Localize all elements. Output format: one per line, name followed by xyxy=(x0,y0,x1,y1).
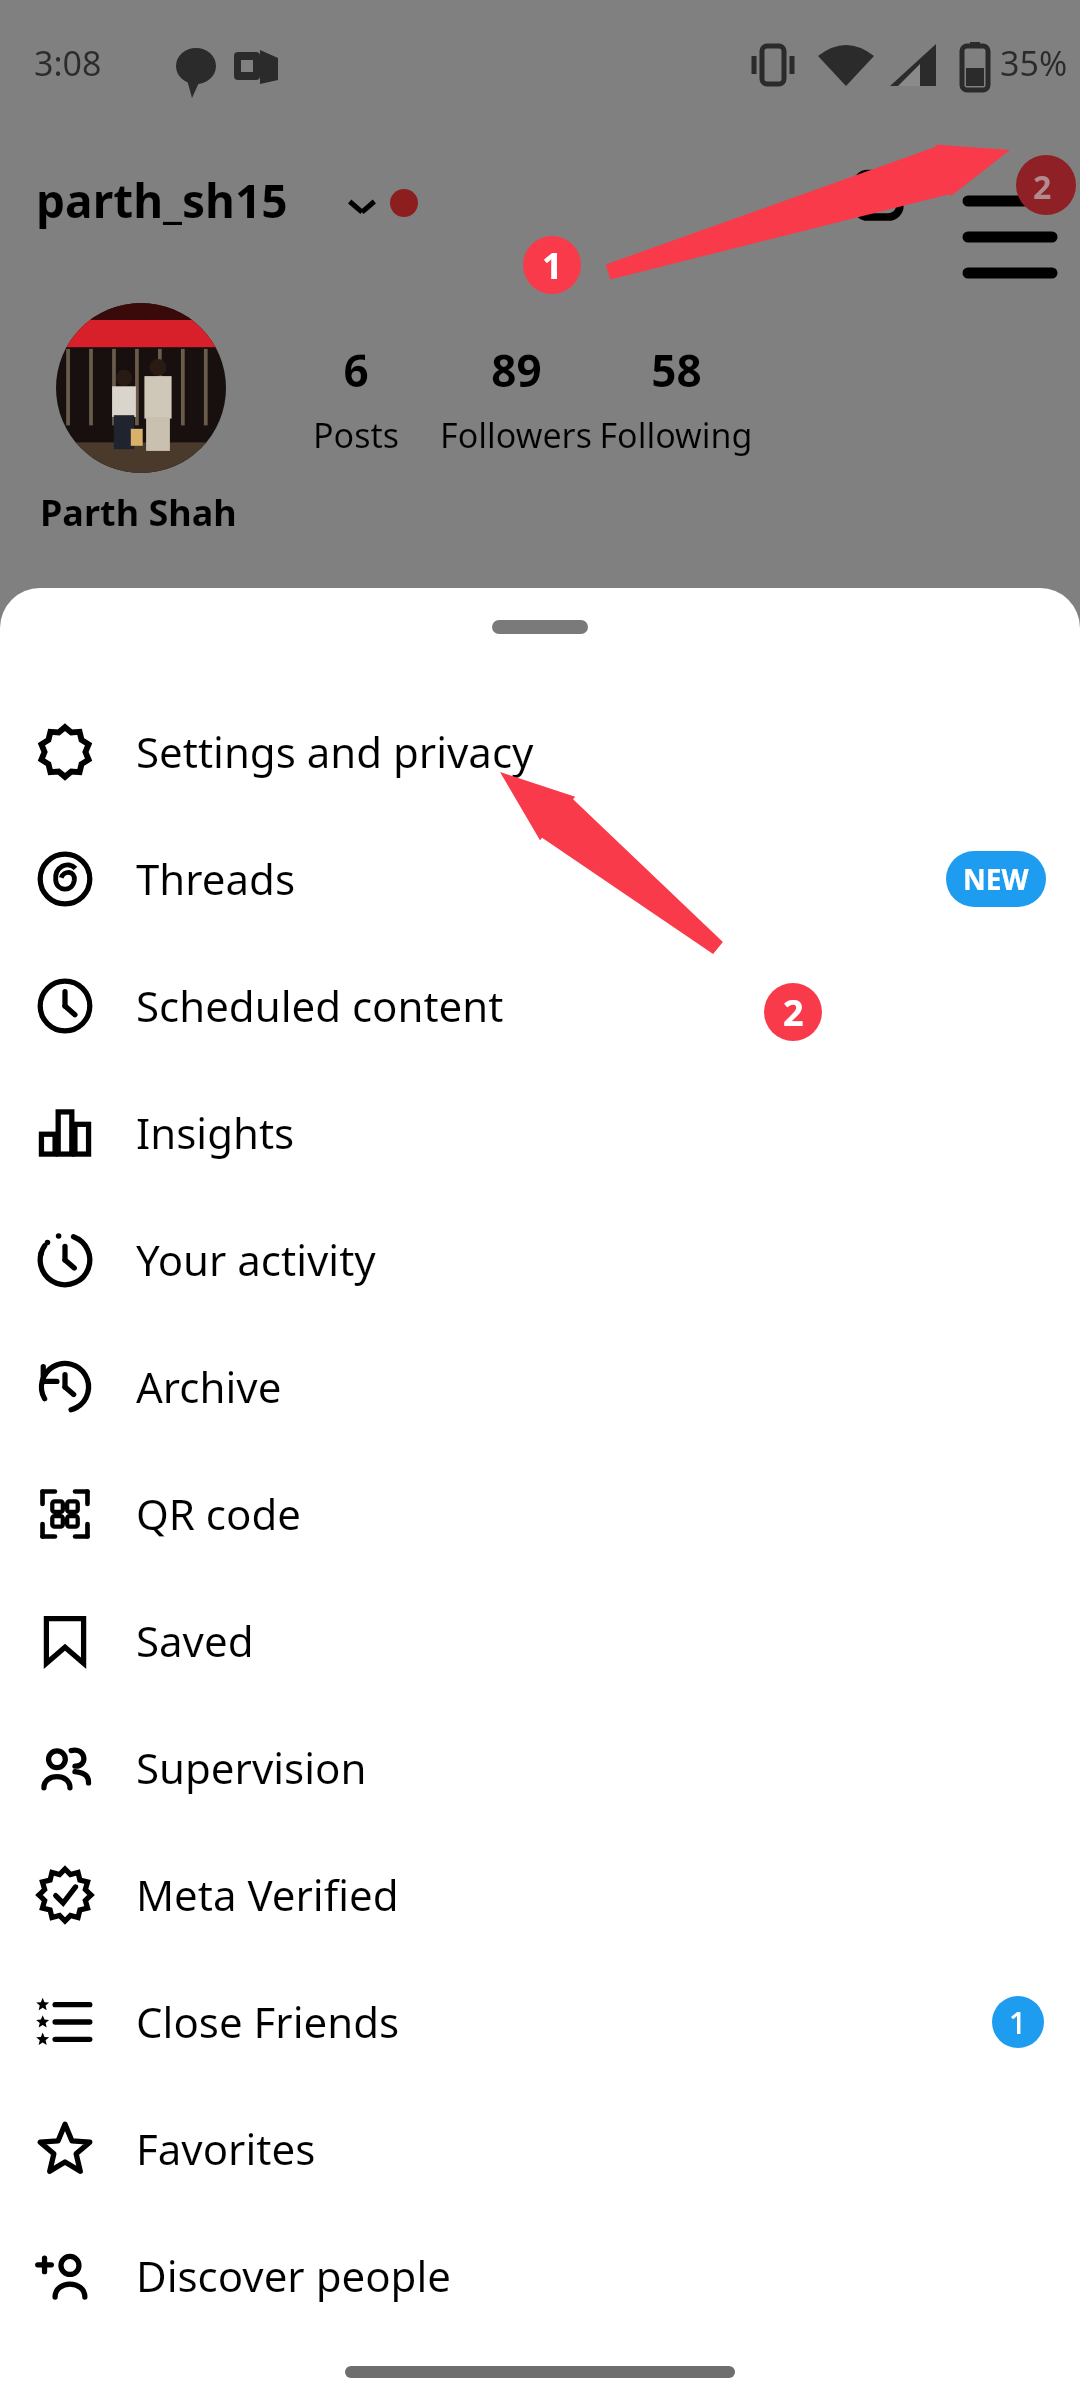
staticText: Archive xyxy=(136,1358,282,1415)
button[interactable]: 58 xyxy=(556,340,796,470)
button[interactable]: Switch account xyxy=(340,183,384,227)
staticText: Meta Verified xyxy=(136,1866,399,1923)
staticText: Close Friends xyxy=(136,1993,400,2050)
staticText: Settings and privacy xyxy=(136,723,534,780)
button[interactable]: Threads xyxy=(0,815,1080,942)
button[interactable]: Close Friends xyxy=(0,1958,1080,2085)
button[interactable]: Archive xyxy=(0,1323,1080,1450)
staticText: 2 xyxy=(783,988,804,1037)
staticText: Favorites xyxy=(136,2120,316,2177)
staticText: 2 xyxy=(1033,165,1052,209)
staticText: Supervision xyxy=(136,1739,367,1796)
button[interactable]: QR code xyxy=(0,1450,1080,1577)
button[interactable]: Saved xyxy=(0,1577,1080,1704)
staticText: Following xyxy=(599,412,753,458)
button[interactable]: 6 xyxy=(236,340,476,470)
staticText: 35% xyxy=(1000,40,1068,86)
staticText: Your activity xyxy=(136,1231,376,1288)
staticText: 58 xyxy=(651,340,702,400)
button[interactable]: Favorites xyxy=(0,2085,1080,2212)
staticText: Threads xyxy=(136,850,296,907)
button[interactable] xyxy=(56,303,226,473)
staticText: Insights xyxy=(136,1104,295,1161)
button[interactable]: Your activity xyxy=(0,1196,1080,1323)
staticText: 3:08 xyxy=(34,40,102,86)
staticText: Posts xyxy=(313,412,399,458)
button[interactable]: parth_sh15 xyxy=(36,169,288,232)
button[interactable]: Supervision xyxy=(0,1704,1080,1831)
staticText: Discover people xyxy=(136,2247,451,2304)
staticText: 1 xyxy=(1009,2002,1027,2043)
staticText: Followers xyxy=(440,412,592,458)
staticText: Saved xyxy=(136,1612,254,1669)
button[interactable]: Scheduled content xyxy=(0,942,1080,1069)
staticText: NEW xyxy=(963,860,1029,898)
button[interactable]: Discover people xyxy=(0,2212,1080,2339)
button[interactable]: Settings and privacy xyxy=(0,688,1080,815)
staticText: Parth Shah xyxy=(40,488,237,537)
button[interactable]: 89 xyxy=(396,340,636,470)
button[interactable]: Insights xyxy=(0,1069,1080,1196)
staticText: QR code xyxy=(136,1485,301,1542)
button[interactable]: Meta Verified xyxy=(0,1831,1080,1958)
staticText: 1 xyxy=(542,241,563,290)
staticText: 6 xyxy=(343,340,369,400)
staticText: Scheduled content xyxy=(136,977,504,1034)
button[interactable]: Menu xyxy=(940,155,1050,265)
staticText: 89 xyxy=(491,340,542,400)
